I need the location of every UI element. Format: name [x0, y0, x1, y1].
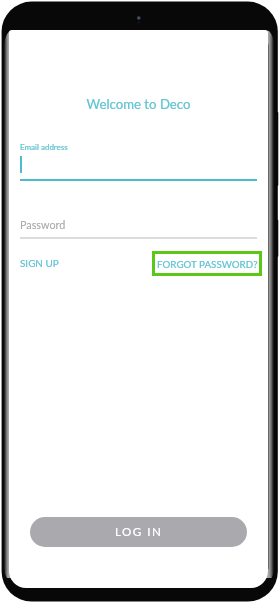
staticText: FORGOT PASSWORD?: [157, 258, 258, 270]
staticText: LOG IN: [115, 525, 163, 539]
staticText: Password: [20, 218, 66, 231]
staticText: SIGN UP: [20, 257, 59, 269]
staticText: Welcome to Deco: [9, 96, 268, 112]
button[interactable]: SIGN UP: [16, 253, 63, 273]
button[interactable]: FORGOT PASSWORD?: [152, 251, 262, 276]
staticText: Email address: [20, 142, 68, 152]
button[interactable]: LOG IN: [30, 517, 247, 547]
